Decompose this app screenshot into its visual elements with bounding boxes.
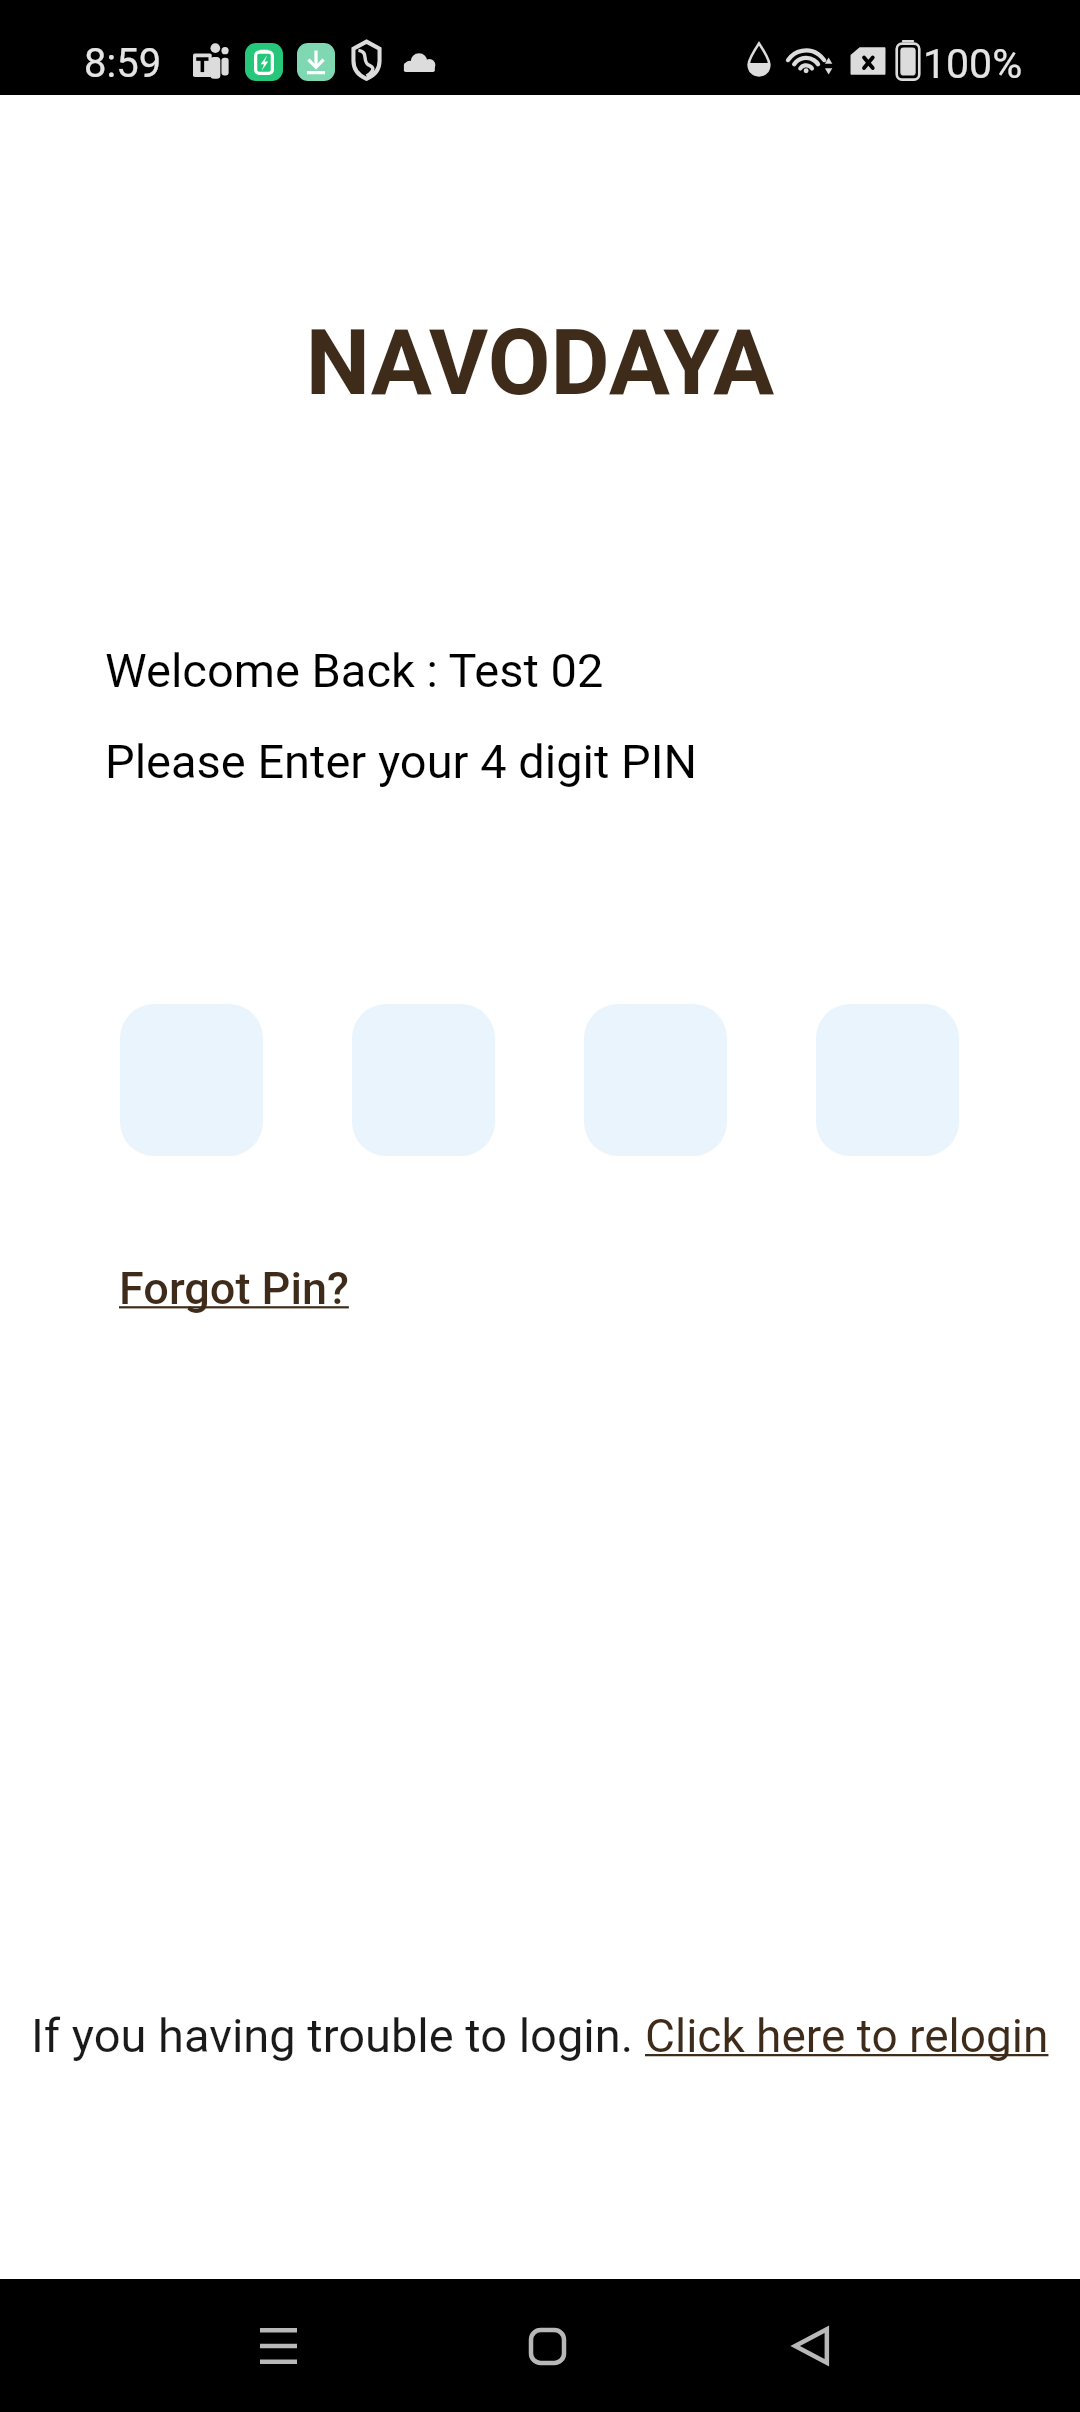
- staticText: Forgot Pin?: [119, 1262, 349, 1315]
- button[interactable]: PIN digit 1: [120, 1004, 263, 1156]
- button[interactable]: Forgot Pin?: [119, 1262, 349, 1315]
- button[interactable]: Home: [487, 2286, 607, 2406]
- staticText: NAVODAYA: [0, 310, 1080, 417]
- button[interactable]: PIN digit 4: [816, 1004, 959, 1156]
- staticText: 8:59: [84, 40, 162, 87]
- button[interactable]: PIN digit 2: [352, 1004, 495, 1156]
- staticText: Welcome Back : Test 02: [105, 643, 604, 698]
- staticText: 100%: [923, 40, 1023, 88]
- button[interactable]: Click here to relogin: [645, 2009, 1049, 2063]
- button[interactable]: Recent apps: [218, 2286, 338, 2406]
- staticText: If you having trouble to login.: [31, 2008, 645, 2063]
- staticText: Click here to relogin: [645, 2009, 1049, 2063]
- button[interactable]: Back: [751, 2286, 871, 2406]
- staticText: Please Enter your 4 digit PIN: [105, 734, 697, 789]
- button[interactable]: PIN digit 3: [584, 1004, 727, 1156]
